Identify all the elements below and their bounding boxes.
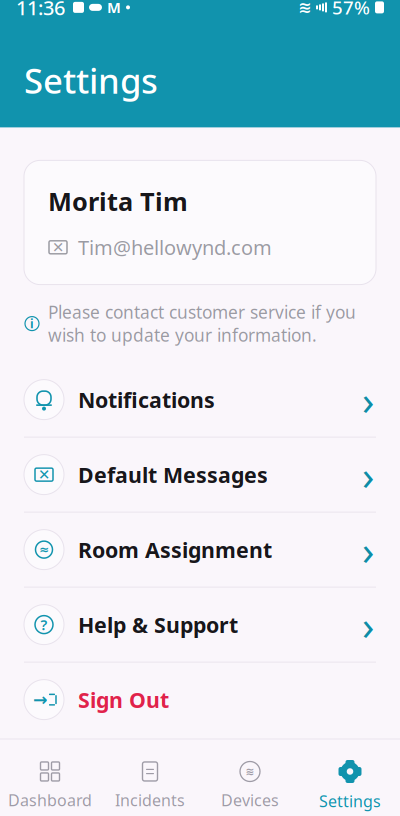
staticText: ✕ bbox=[52, 239, 64, 256]
button[interactable]: ≈ bbox=[0, 513, 400, 587]
staticText: › bbox=[362, 598, 374, 651]
staticText: Dashboard bbox=[8, 789, 92, 811]
staticText: 11:36 bbox=[16, 0, 65, 21]
staticText: ✕ bbox=[38, 466, 50, 483]
staticText: Morita Tim bbox=[48, 184, 188, 218]
staticText: → bbox=[33, 690, 48, 709]
staticText: ≋ bbox=[298, 0, 311, 16]
staticText: › bbox=[362, 373, 374, 426]
staticText: Settings bbox=[24, 57, 158, 103]
staticText: Tim@hellowynd.com bbox=[78, 234, 272, 261]
staticText: Sign Out bbox=[78, 685, 169, 714]
button[interactable]: ✕ bbox=[0, 438, 400, 512]
staticText: Please contact customer service if you w… bbox=[48, 301, 356, 347]
button[interactable]: ? bbox=[0, 588, 400, 662]
staticText: ? bbox=[40, 615, 47, 634]
button[interactable]: Notifications bbox=[0, 363, 400, 437]
staticText: Help & Support bbox=[78, 610, 238, 639]
button[interactable]: ≋ bbox=[200, 750, 300, 816]
staticText: Default Messages bbox=[78, 460, 268, 489]
staticText: ≋ bbox=[245, 765, 254, 777]
button[interactable]: Settings bbox=[300, 749, 400, 816]
staticText: › bbox=[362, 448, 374, 501]
staticText: › bbox=[362, 523, 374, 576]
staticText: Settings bbox=[319, 790, 381, 812]
staticText: i bbox=[30, 316, 34, 331]
staticText: 57% bbox=[332, 0, 370, 20]
staticText: ≈ bbox=[39, 543, 49, 556]
staticText: Room Assignment bbox=[78, 535, 272, 564]
button[interactable]: → bbox=[0, 663, 400, 737]
staticText: Notifications bbox=[78, 385, 215, 414]
button[interactable]: Incidents bbox=[100, 750, 200, 816]
staticText: M bbox=[107, 0, 121, 17]
button[interactable]: Dashboard bbox=[0, 750, 100, 816]
staticText: Incidents bbox=[115, 789, 185, 811]
staticText: Devices bbox=[221, 789, 279, 811]
